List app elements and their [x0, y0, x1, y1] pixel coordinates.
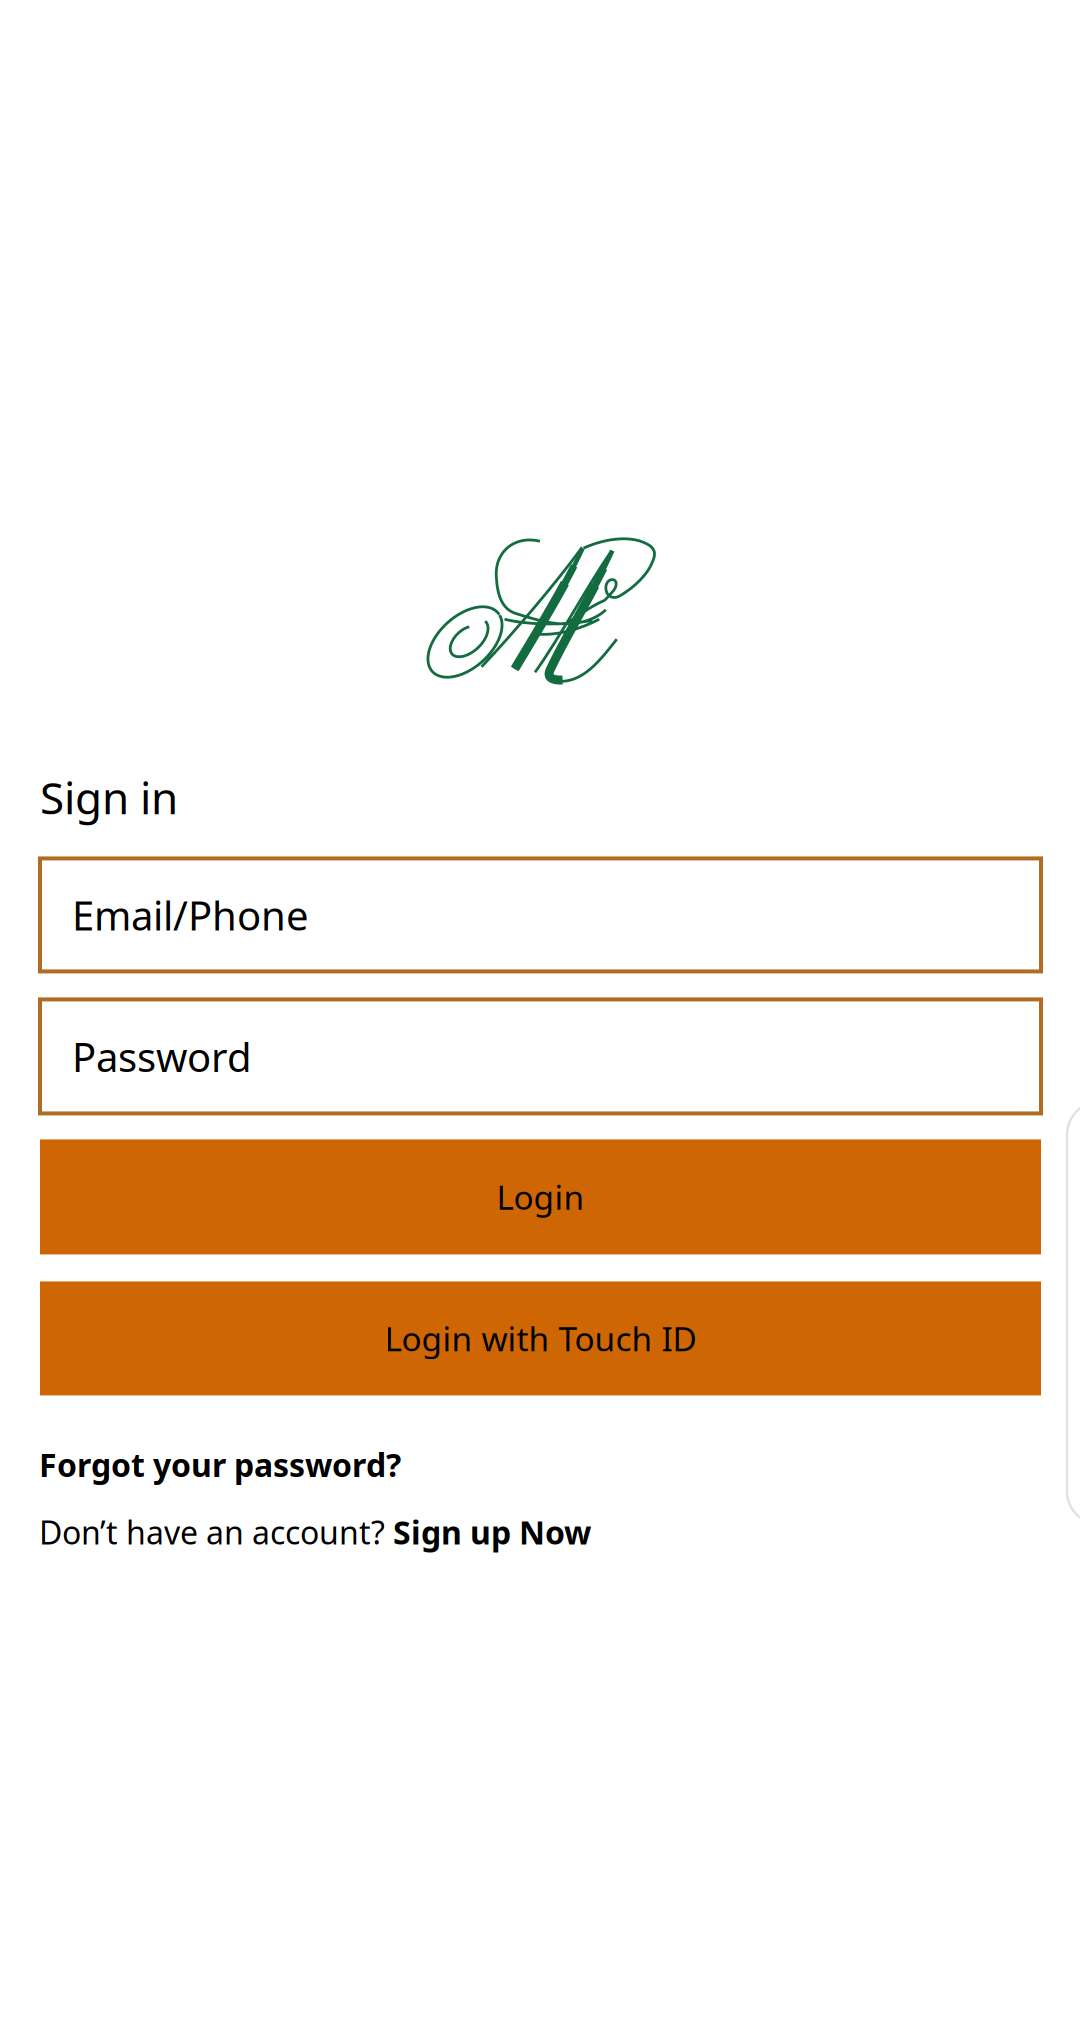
staticText: Login with Touch ID: [384, 1316, 696, 1361]
button[interactable]: Login: [0, 1139, 1080, 1254]
button[interactable]: Password: [0, 999, 1080, 1113]
button[interactable]: Don’t have an account?: [0, 1507, 601, 1557]
button[interactable]: Login with Touch ID: [0, 1281, 1080, 1395]
staticText: Email/Phone: [72, 888, 309, 941]
button[interactable]: Email/Phone: [0, 858, 1080, 971]
button[interactable]: Forgot your password?: [0, 1439, 411, 1490]
staticText: Forgot your password?: [39, 1443, 401, 1486]
staticText: Sign in: [40, 768, 178, 826]
staticText: Login: [496, 1175, 584, 1219]
staticText: Don’t have an account?: [39, 1511, 393, 1553]
staticText: Password: [72, 1030, 252, 1083]
staticText: Sign up Now: [393, 1511, 591, 1553]
